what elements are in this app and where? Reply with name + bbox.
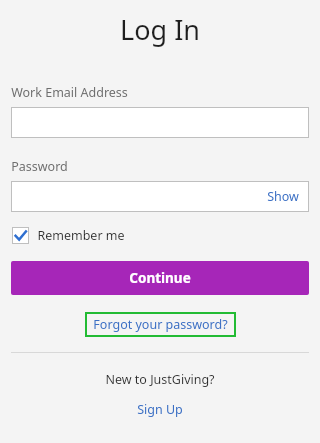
button[interactable]: Remember me xyxy=(12,225,131,246)
button[interactable]: Continue xyxy=(11,261,309,295)
staticText: Password xyxy=(11,158,68,175)
button[interactable] xyxy=(11,107,309,138)
staticText: Forgot your password? xyxy=(93,316,228,333)
staticText: Remember me xyxy=(37,227,125,244)
staticText: Log In xyxy=(120,11,200,48)
button[interactable]: Sign Up xyxy=(129,398,191,421)
button[interactable]: Forgot your password? xyxy=(85,312,236,337)
staticText: New to JustGiving? xyxy=(105,371,215,388)
staticText: Work Email Address xyxy=(11,84,128,101)
staticText: Show xyxy=(267,188,299,205)
staticText: Continue xyxy=(129,269,191,287)
staticText: Sign Up xyxy=(137,401,183,418)
button[interactable]: Show xyxy=(258,182,308,211)
